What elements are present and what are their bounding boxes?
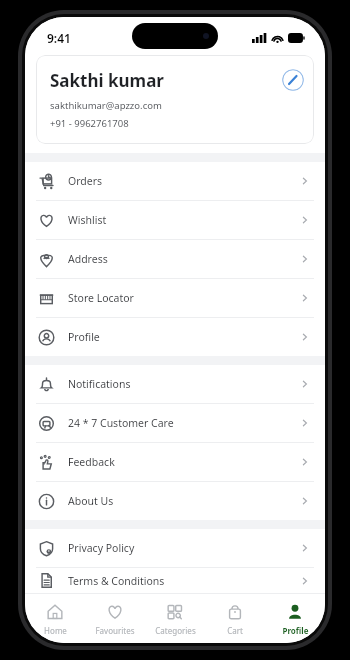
staticText: Favourites [95, 625, 135, 636]
button[interactable]: Home [25, 596, 85, 643]
button[interactable]: 24 * 7 Customer Care [25, 404, 325, 442]
button[interactable]: Feedback [25, 443, 325, 481]
button[interactable]: Favourites [85, 596, 145, 643]
button[interactable]: Address [25, 240, 325, 278]
button[interactable]: Wishlist [25, 201, 325, 239]
staticText: Profile [282, 625, 309, 636]
button[interactable]: Notifications [25, 365, 325, 403]
button[interactable]: Store Locator [25, 279, 325, 317]
staticText: Cart [227, 625, 243, 636]
staticText: Wishlist [68, 213, 300, 227]
staticText: About Us [68, 494, 300, 508]
button[interactable]: Privacy Policy [25, 529, 325, 567]
staticText: 24 * 7 Customer Care [68, 416, 300, 430]
staticText: Home [44, 625, 67, 636]
staticText: Terms & Conditions [68, 574, 300, 588]
staticText: Orders [68, 174, 300, 188]
staticText: Sakthi kumar [50, 69, 164, 92]
button[interactable]: Categories [145, 596, 205, 643]
button[interactable]: Cart [205, 596, 265, 643]
button[interactable]: Profile [265, 596, 325, 643]
button[interactable]: Edit profile [282, 69, 304, 91]
staticText: sakthikumar@apzzo.com [50, 99, 162, 112]
staticText: 9:41 [47, 30, 71, 46]
staticText: Categories [155, 625, 196, 636]
button[interactable]: Profile [25, 318, 325, 356]
button[interactable]: Sakthi kumar [36, 55, 314, 144]
button[interactable]: Orders [25, 162, 325, 200]
staticText: Store Locator [68, 291, 300, 305]
button[interactable]: Terms & Conditions [25, 568, 325, 593]
staticText: Privacy Policy [68, 541, 300, 555]
staticText: Notifications [68, 377, 300, 391]
staticText: Address [68, 252, 300, 266]
staticText: +91 - 9962761708 [50, 117, 129, 130]
button[interactable]: About Us [25, 482, 325, 520]
staticText: Profile [68, 330, 300, 344]
staticText: Feedback [68, 455, 300, 469]
